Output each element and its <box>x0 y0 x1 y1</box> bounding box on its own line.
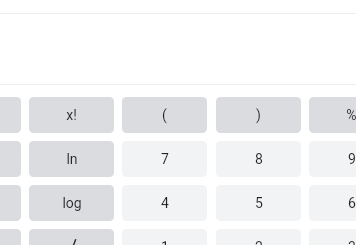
button[interactable]: Eight <box>216 141 301 177</box>
staticText: 7 <box>161 151 169 167</box>
staticText: 9 <box>348 151 356 167</box>
button[interactable]: Square root <box>29 229 114 245</box>
button[interactable]: Nine <box>309 141 356 177</box>
button[interactable]: Five <box>216 185 301 221</box>
staticText: ln <box>66 151 78 167</box>
button[interactable]: Natural logarithm <box>29 141 114 177</box>
staticText: √ <box>66 235 77 245</box>
button[interactable]: Cosine <box>0 229 21 245</box>
button[interactable]: Three <box>309 229 356 245</box>
button[interactable]: Sine <box>0 185 21 221</box>
staticText: 5 <box>255 195 263 211</box>
button[interactable]: Percent <box>309 97 356 133</box>
button[interactable]: One <box>122 229 207 245</box>
staticText: 8 <box>255 151 263 167</box>
button[interactable]: Natural exponent <box>0 141 21 177</box>
staticText: x! <box>66 107 77 123</box>
staticText: 6 <box>348 195 356 211</box>
button[interactable]: Two <box>216 229 301 245</box>
button[interactable]: Seven <box>122 141 207 177</box>
button[interactable]: Open bracket <box>122 97 207 133</box>
staticText: ) <box>256 107 261 123</box>
button[interactable]: Logarithm <box>29 185 114 221</box>
staticText: 3 <box>348 239 356 245</box>
button[interactable]: Factorial <box>29 97 114 133</box>
button[interactable]: Inverse <box>0 97 21 133</box>
staticText: 2 <box>255 239 263 245</box>
button[interactable]: Four <box>122 185 207 221</box>
staticText: 1 <box>161 239 169 245</box>
button[interactable]: Close bracket <box>216 97 301 133</box>
button[interactable]: Six <box>309 185 356 221</box>
staticText: ( <box>162 107 167 123</box>
staticText: log <box>62 195 82 211</box>
staticText: % <box>346 107 356 123</box>
staticText: 4 <box>161 195 169 211</box>
